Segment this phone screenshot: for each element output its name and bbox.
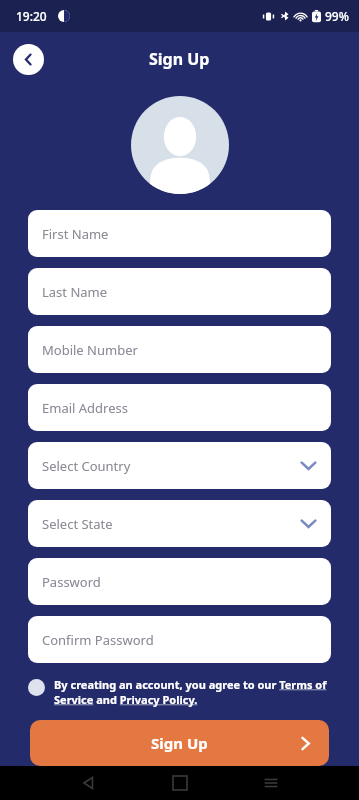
button[interactable]: Select State bbox=[28, 500, 331, 547]
button[interactable]: Password bbox=[28, 558, 331, 605]
staticText: Email Address bbox=[42, 399, 128, 417]
staticText: Select State bbox=[42, 515, 113, 533]
button[interactable]: Confirm Password bbox=[28, 616, 331, 663]
staticText: Password bbox=[42, 573, 101, 591]
staticText: Last Name bbox=[42, 283, 108, 301]
other: Open Select State bbox=[300, 515, 317, 532]
button[interactable]: First Name bbox=[28, 210, 331, 257]
button[interactable]: Email Address bbox=[28, 384, 331, 431]
button[interactable]: Last Name bbox=[28, 268, 331, 315]
button[interactable]: Mobile Number bbox=[28, 326, 331, 373]
other: Agree to terms bbox=[28, 679, 45, 696]
button[interactable]: Sign Up bbox=[30, 720, 329, 766]
staticText: By creating an account, you agree to our… bbox=[54, 677, 331, 707]
button[interactable]: Back bbox=[80, 775, 96, 791]
staticText: Select Country bbox=[42, 457, 131, 475]
staticText: 99% bbox=[325, 8, 349, 24]
staticText: Sign Up bbox=[151, 733, 208, 753]
button[interactable]: Recents bbox=[263, 775, 279, 791]
button[interactable]: Select Country bbox=[28, 442, 331, 489]
other: Open Select Country bbox=[300, 457, 317, 474]
button[interactable]: Home bbox=[173, 776, 187, 790]
staticText: Confirm Password bbox=[42, 631, 154, 649]
button[interactable]: Agree to terms bbox=[28, 677, 331, 707]
staticText: 19:20 bbox=[16, 8, 47, 24]
staticText: First Name bbox=[42, 225, 109, 243]
staticText: Mobile Number bbox=[42, 341, 138, 359]
staticText: Sign Up bbox=[149, 48, 210, 70]
button[interactable]: Back bbox=[13, 44, 44, 75]
button[interactable]: Profile photo bbox=[131, 96, 229, 194]
